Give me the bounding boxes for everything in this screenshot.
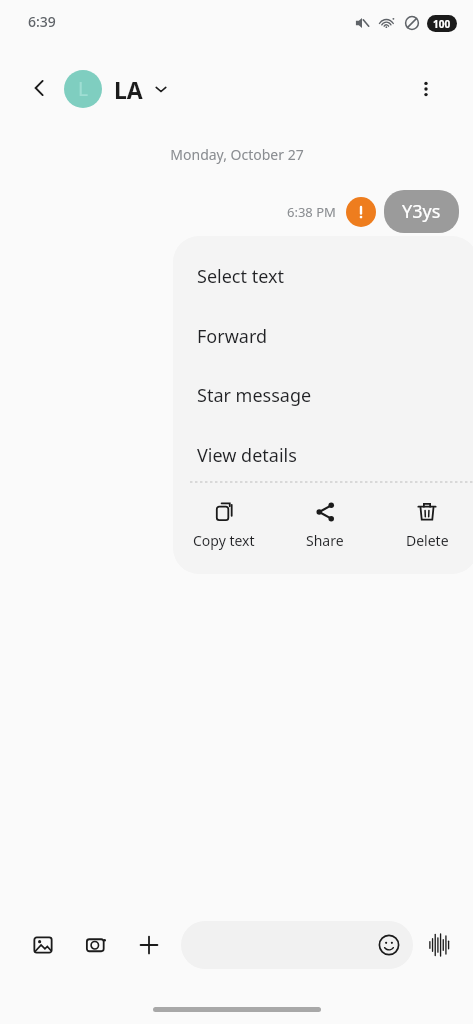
staticText: 6:38 PM bbox=[287, 203, 336, 221]
staticText: Star message bbox=[197, 383, 312, 408]
button[interactable]: Voice message bbox=[419, 925, 459, 965]
staticText: Forward bbox=[197, 324, 268, 349]
button[interactable]: More options bbox=[405, 68, 447, 110]
staticText: View details bbox=[197, 443, 297, 468]
staticText: Select text bbox=[197, 264, 284, 289]
staticText: Share bbox=[306, 531, 344, 550]
button[interactable]: Delete bbox=[376, 494, 473, 550]
button[interactable]: Emoji bbox=[373, 929, 405, 961]
staticText: LA bbox=[114, 74, 143, 105]
button[interactable]: Back bbox=[20, 68, 60, 108]
staticText: Monday, October 27 bbox=[170, 145, 304, 164]
button[interactable]: Camera bbox=[75, 924, 117, 966]
staticText: 6:39 bbox=[28, 12, 56, 31]
button[interactable]: Y3ys bbox=[384, 190, 459, 233]
button[interactable]: Copy text bbox=[173, 494, 274, 550]
staticText: Y3ys bbox=[402, 199, 441, 224]
button[interactable]: Star message bbox=[173, 365, 473, 425]
button[interactable]: Add attachment bbox=[128, 924, 170, 966]
button[interactable]: Forward bbox=[173, 306, 473, 366]
staticText: Copy text bbox=[193, 531, 255, 550]
button[interactable]: Gallery bbox=[22, 924, 64, 966]
button[interactable]: Select text bbox=[173, 246, 473, 306]
staticText: L bbox=[78, 76, 88, 102]
button[interactable]: Share bbox=[274, 494, 376, 550]
staticText: Delete bbox=[406, 531, 449, 550]
button[interactable]: Not sent, tap to retry bbox=[346, 197, 376, 227]
button[interactable]: View details bbox=[173, 425, 473, 485]
button[interactable]: L bbox=[64, 66, 169, 112]
staticText: 100 bbox=[433, 17, 451, 31]
button[interactable]: Emoji bbox=[181, 921, 413, 969]
